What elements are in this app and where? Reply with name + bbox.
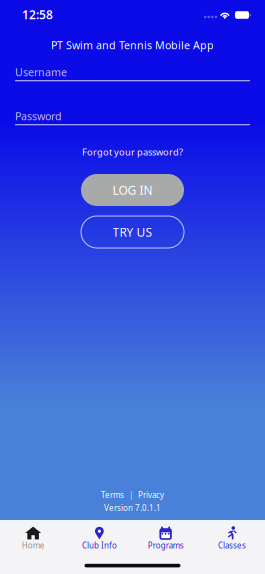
button[interactable]: TRY US bbox=[81, 216, 184, 248]
button[interactable]: Forgot your password? bbox=[0, 144, 265, 160]
staticText: Privacy bbox=[138, 490, 164, 500]
staticText: Version 7.0.1.1 bbox=[104, 503, 161, 513]
staticText: LOG IN bbox=[112, 182, 152, 198]
button[interactable]: Programs bbox=[132, 526, 199, 558]
button[interactable]: Privacy bbox=[138, 490, 164, 500]
button[interactable]: Club Info bbox=[66, 526, 132, 558]
staticText: Home bbox=[22, 540, 45, 551]
staticText: Club Info bbox=[82, 540, 117, 551]
button[interactable]: Terms bbox=[101, 490, 124, 500]
staticText: Password bbox=[15, 109, 62, 123]
staticText: Programs bbox=[148, 540, 184, 551]
staticText: PT Swim and Tennis Mobile App bbox=[51, 38, 214, 52]
button[interactable]: Classes bbox=[199, 526, 265, 558]
staticText: Username bbox=[15, 65, 67, 79]
staticText: Classes bbox=[218, 540, 246, 551]
staticText: Terms bbox=[101, 490, 124, 500]
staticText: 12:58 bbox=[22, 6, 53, 22]
button[interactable]: Home bbox=[0, 526, 66, 558]
staticText: Forgot your password? bbox=[82, 146, 183, 158]
button[interactable]: LOG IN bbox=[81, 174, 184, 206]
staticText: TRY US bbox=[112, 224, 152, 240]
staticText: | bbox=[129, 490, 133, 500]
